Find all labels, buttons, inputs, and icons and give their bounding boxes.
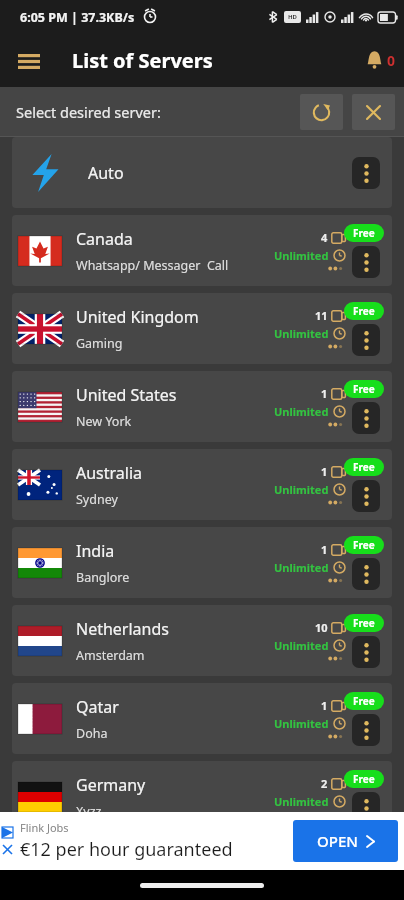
button[interactable]: More options [352,402,380,434]
button[interactable]: Notifications, 0 unread [365,50,396,71]
button[interactable]: More options [352,480,380,512]
staticText: Unlimited [274,794,329,809]
button[interactable]: Free [344,224,384,242]
staticText: Unlimited [274,638,329,653]
staticText: Sydney [76,491,118,508]
staticText: 2 [321,776,328,791]
button[interactable]: Free [344,458,384,476]
staticText: 10 [315,620,328,635]
staticText: 0 [387,51,396,70]
button[interactable]: More options [352,324,380,356]
button[interactable]: Qatar [12,683,392,754]
button[interactable]: More options [352,157,380,189]
staticText: United Kingdom [76,306,199,328]
button[interactable]: Close [352,94,395,130]
button[interactable]: Germany [12,761,392,832]
button[interactable]: More options [352,246,380,278]
button[interactable]: More options [352,792,380,824]
staticText: Free [353,304,375,318]
staticText: United States [76,384,177,406]
staticText: 11 [315,308,328,323]
button[interactable]: More options [352,714,380,746]
staticText: India [76,540,115,562]
staticText: Free [353,226,375,240]
staticText: Unlimited [274,482,329,497]
staticText: 6:05 PM | 37.3KB/s [20,9,135,26]
staticText: Unlimited [274,404,329,419]
button[interactable]: Free [344,770,384,788]
button[interactable]: Australia [12,449,392,520]
button[interactable]: India [12,527,392,598]
staticText: Unlimited [274,248,329,263]
staticText: Whatsapp/ Messager Call [76,257,229,274]
button[interactable]: Free [344,380,384,398]
staticText: 1 [321,464,328,479]
staticText: Unlimited [274,560,329,575]
staticText: 1 [321,542,328,557]
staticText: Qatar [76,696,119,718]
staticText: Free [353,382,375,396]
button[interactable]: Free [344,692,384,710]
staticText: Australia [76,462,143,484]
staticText: Free [353,616,375,630]
button[interactable]: Free [344,302,384,320]
staticText: New York [76,413,132,430]
staticText: Xyzz [76,803,102,820]
staticText: OPEN [317,831,358,851]
staticText: Flink Jobs [20,820,69,835]
button[interactable]: Netherlands [12,605,392,676]
staticText: Banglore [76,569,130,586]
staticText: Free [353,694,375,708]
staticText: Canada [76,228,133,250]
staticText: Free [353,538,375,552]
button[interactable]: United States [12,371,392,442]
button[interactable]: Free [344,536,384,554]
staticText: Netherlands [76,618,169,640]
button[interactable]: More options [352,558,380,590]
staticText: Gaming [76,335,123,352]
staticText: Doha [76,725,108,742]
staticText: 1 [321,698,328,713]
button[interactable]: Canada [12,215,392,286]
staticText: Germany [76,774,146,796]
button[interactable]: Refresh server list [300,94,343,130]
staticText: HD [288,13,297,21]
button[interactable]: Flink Jobs [0,812,404,870]
staticText: 1 [321,386,328,401]
staticText: Auto [88,162,124,184]
button[interactable]: United Kingdom [12,293,392,364]
button[interactable]: OPEN [293,820,398,862]
button[interactable]: Auto [12,137,392,208]
staticText: Free [353,772,375,786]
staticText: Free [353,460,375,474]
staticText: 4 [321,230,328,245]
staticText: Select desired server: [16,102,161,122]
staticText: List of Servers [72,47,213,74]
staticText: Amsterdam [76,647,145,664]
button[interactable]: Free [344,614,384,632]
staticText: Unlimited [274,716,329,731]
staticText: €12 per hour guaranteed [20,837,233,862]
button[interactable]: More options [352,636,380,668]
button[interactable]: Open navigation menu [8,40,50,82]
staticText: Unlimited [274,326,329,341]
